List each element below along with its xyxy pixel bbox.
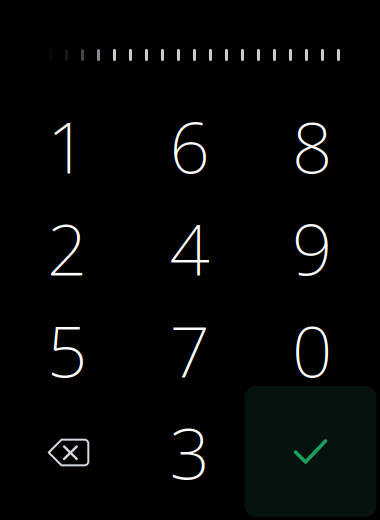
staticText: 1 <box>47 99 87 193</box>
button[interactable]: 6 <box>128 95 250 196</box>
button[interactable]: 4 <box>128 197 250 298</box>
button[interactable]: 3 <box>128 401 250 502</box>
staticText: 0 <box>292 303 332 397</box>
staticText: 5 <box>47 303 87 397</box>
staticText: 7 <box>169 303 209 397</box>
staticText: 8 <box>292 99 332 193</box>
button[interactable]: 5 <box>6 299 128 400</box>
button[interactable]: Delete <box>7 402 129 503</box>
staticText: 2 <box>47 201 87 295</box>
staticText: 6 <box>169 99 209 193</box>
staticText: 4 <box>169 201 209 295</box>
button[interactable]: 1 <box>6 95 128 196</box>
button[interactable]: 9 <box>251 197 373 298</box>
staticText: 3 <box>169 405 209 499</box>
button[interactable]: 8 <box>251 95 373 196</box>
button[interactable]: 0 <box>251 299 373 400</box>
button[interactable]: Confirm passcode <box>244 386 376 517</box>
button[interactable]: 2 <box>6 197 128 298</box>
staticText: 9 <box>292 201 332 295</box>
button[interactable]: 7 <box>128 299 250 400</box>
